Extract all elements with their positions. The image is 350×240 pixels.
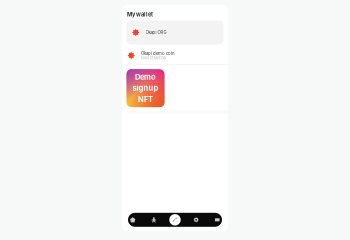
button[interactable]: Okapi ORG — [126, 20, 223, 44]
button[interactable]: Home — [130, 213, 136, 227]
button[interactable]: Okapi demo coin — [122, 46, 228, 64]
staticText: signup — [132, 84, 158, 93]
staticText: Okapi demo coin — [141, 51, 175, 56]
button[interactable]: Profile — [151, 213, 157, 227]
staticText: NFT — [138, 95, 153, 104]
staticText: Demo — [135, 72, 156, 81]
staticText: 6800 DEMOCOIN — [141, 56, 166, 60]
button[interactable]: Demo — [126, 69, 164, 107]
button[interactable]: Activity — [214, 213, 220, 227]
staticText: Okapi ORG — [145, 30, 166, 35]
staticText: My wallet — [127, 11, 153, 18]
button[interactable]: Scan — [172, 213, 178, 227]
button[interactable]: Settings — [193, 213, 199, 227]
